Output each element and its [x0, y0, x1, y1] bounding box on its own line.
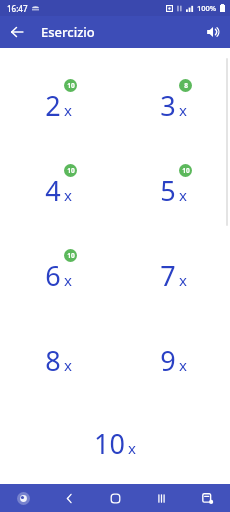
staticText: 3: [160, 87, 176, 124]
staticText: 2: [45, 87, 61, 124]
button[interactable]: 6: [21, 247, 95, 303]
button[interactable]: Back: [46, 484, 92, 512]
staticText: Esercizio: [41, 23, 95, 41]
button[interactable]: Recents: [138, 484, 184, 512]
staticText: x: [64, 100, 72, 120]
staticText: 10: [67, 166, 75, 175]
staticText: 10: [67, 251, 75, 260]
button[interactable]: 4: [21, 162, 95, 218]
button[interactable]: 10: [72, 415, 158, 471]
staticText: x: [64, 185, 72, 205]
staticText: x: [179, 100, 187, 120]
button[interactable]: 9: [136, 332, 210, 388]
staticText: x: [64, 270, 72, 290]
staticText: 16:47: [7, 3, 28, 14]
staticText: 10: [94, 425, 125, 462]
staticText: x: [179, 270, 187, 290]
staticText: x: [179, 185, 187, 205]
staticText: 100%: [197, 3, 217, 13]
staticText: x: [128, 438, 136, 458]
staticText: 10: [67, 81, 75, 90]
button[interactable]: Accessibility: [0, 484, 46, 512]
staticText: x: [64, 355, 72, 375]
button[interactable]: 8: [21, 332, 95, 388]
button[interactable]: Home: [92, 484, 138, 512]
staticText: x: [179, 355, 187, 375]
button[interactable]: 2: [21, 77, 95, 133]
staticText: 8: [184, 81, 188, 90]
staticText: 9: [160, 342, 176, 379]
staticText: 6: [45, 257, 61, 294]
staticText: 7: [160, 257, 176, 294]
button[interactable]: Screenshot: [184, 484, 230, 512]
staticText: 8: [45, 342, 61, 379]
button[interactable]: 7: [136, 247, 210, 303]
button[interactable]: 3: [136, 77, 210, 133]
staticText: 4: [45, 172, 61, 209]
button[interactable]: 5: [136, 162, 210, 218]
staticText: 5: [160, 172, 176, 209]
button[interactable]: Back: [4, 19, 30, 45]
staticText: 10: [182, 166, 190, 175]
button[interactable]: Sound: [200, 19, 226, 45]
